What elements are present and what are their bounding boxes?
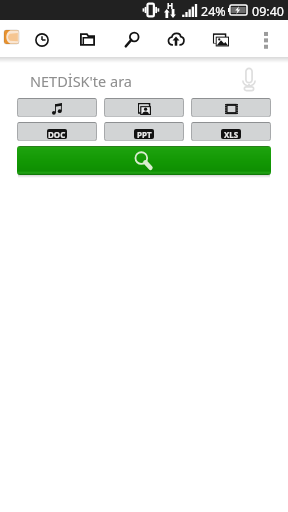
button[interactable]: Folders (70, 20, 104, 57)
button[interactable]: Search (17, 146, 271, 175)
staticText: PPT (137, 129, 152, 139)
button[interactable]: Upload (159, 20, 193, 57)
button[interactable]: Music files (17, 98, 97, 117)
button[interactable]: NETDISK home (2, 28, 20, 46)
staticText: XLS (224, 129, 239, 139)
button[interactable]: Photo files (104, 98, 184, 117)
staticText: H (167, 0, 174, 11)
button[interactable]: Video files (191, 98, 271, 117)
staticText: 09:40 (252, 3, 284, 20)
button[interactable]: NETDİSK'te ara (0, 66, 288, 96)
button[interactable]: More options (254, 20, 278, 57)
button[interactable]: Voice search (236, 68, 262, 94)
button[interactable]: Recent files (25, 20, 59, 57)
button[interactable]: XLS (191, 122, 271, 141)
button[interactable]: Gallery (204, 20, 238, 57)
staticText: DOC (48, 129, 66, 139)
button[interactable]: DOC (17, 122, 97, 141)
button[interactable]: PPT (104, 122, 184, 141)
staticText: 24% (201, 3, 226, 20)
button[interactable]: Search (115, 20, 149, 57)
staticText: NETDİSK'te ara (30, 71, 132, 91)
